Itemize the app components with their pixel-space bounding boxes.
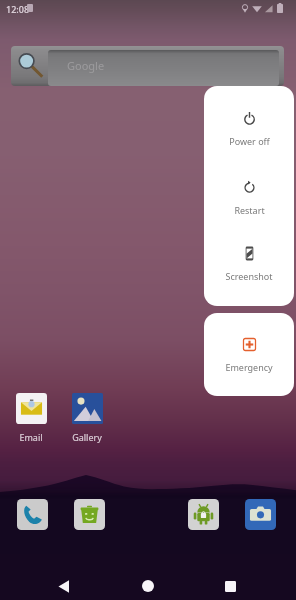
button[interactable]: Recents [211, 567, 249, 600]
button[interactable]: Power off [204, 86, 294, 156]
button[interactable]: Google [11, 46, 284, 86]
button[interactable]: Screenshot [204, 224, 294, 306]
button[interactable]: Back [44, 567, 82, 600]
button[interactable]: Home [129, 567, 167, 600]
button[interactable]: Email [3, 393, 59, 443]
staticText: Power off [229, 135, 270, 147]
button[interactable]: Gallery [59, 393, 115, 443]
staticText: 12:08 [6, 3, 30, 15]
staticText: Restart [234, 204, 265, 216]
button[interactable]: Camera [245, 499, 276, 530]
staticText: Google [67, 58, 105, 73]
staticText: Screenshot [225, 270, 273, 282]
button[interactable]: Play Store [188, 499, 219, 530]
button[interactable]: Emergency [204, 313, 294, 396]
staticText: Email [19, 431, 43, 443]
staticText: Emergency [225, 361, 273, 373]
button[interactable]: Restart [204, 156, 294, 224]
button[interactable]: Phone [17, 499, 48, 530]
staticText: Gallery [72, 431, 102, 443]
button[interactable]: Messages [74, 499, 105, 530]
